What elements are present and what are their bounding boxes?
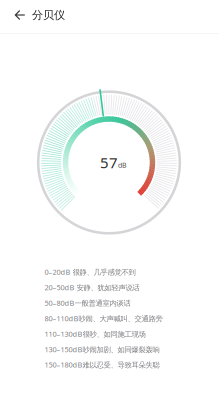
staticText: dB — [118, 160, 127, 170]
staticText: 20–50dB 安静、犹如轻声说话 — [44, 282, 139, 293]
button[interactable]: 返回 — [8, 1, 32, 29]
staticText: 57 — [100, 152, 118, 173]
staticText: 150–180dB难以忍受、导致耳朵失聪 — [44, 360, 159, 370]
staticText: 130–150dB吵闹加剧、如同爆裂轰响 — [44, 344, 159, 354]
staticText: 50–80dB一般普通室内谈话 — [44, 298, 130, 308]
staticText: 0–20dB 很静、几乎感觉不到 — [44, 267, 135, 277]
staticText: 分贝仪 — [32, 8, 65, 22]
staticText: 110–130dB很吵、如同施工现场 — [44, 329, 145, 339]
staticText: 80–110dB吵闹、大声喊叫、交通路旁 — [44, 313, 162, 323]
